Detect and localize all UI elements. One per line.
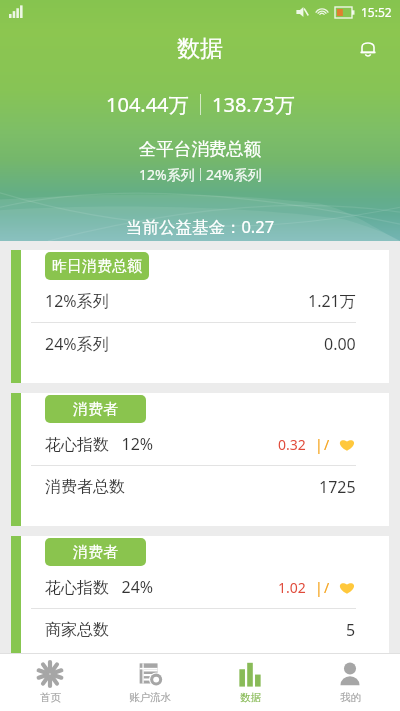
staticText: | — [315, 578, 323, 597]
staticText: 5 — [346, 619, 356, 641]
staticText: 1725 — [319, 476, 356, 498]
staticText: 138.73万 — [212, 91, 295, 117]
staticText: 首页 — [40, 691, 61, 704]
staticText: 花心指数 24% — [45, 576, 154, 598]
staticText: | — [315, 435, 323, 454]
button[interactable]: Notifications — [348, 28, 388, 68]
staticText: 1.21万 — [308, 290, 356, 312]
staticText: 12%系列 — [45, 290, 109, 312]
button[interactable]: 昨日消费总额 — [11, 250, 389, 383]
button[interactable]: 数据 — [200, 654, 300, 711]
staticText: 消费者 — [73, 400, 118, 419]
staticText: 12%系列 — [139, 165, 195, 184]
staticText: / — [324, 578, 330, 597]
staticText: 15:52 — [361, 4, 392, 20]
staticText: 104.44万 — [106, 91, 189, 117]
staticText: 数据 — [240, 691, 261, 704]
staticText: 账户流水 — [129, 691, 171, 704]
staticText: 我的 — [340, 691, 361, 704]
staticText: / — [324, 435, 330, 454]
staticText: 花心指数 12% — [45, 433, 154, 455]
staticText: 24%系列 — [45, 333, 109, 355]
staticText: 数据 — [0, 34, 400, 63]
staticText: 昨日消费总额 — [52, 257, 142, 276]
staticText: 0.00 — [324, 333, 356, 355]
staticText: 24%系列 — [206, 165, 262, 184]
staticText: 消费者总数 — [45, 477, 125, 497]
button[interactable]: 账户流水 — [100, 654, 200, 711]
staticText: 商家总数 — [45, 620, 109, 640]
button[interactable]: 首页 — [0, 654, 100, 711]
button[interactable]: 消费者 — [11, 536, 389, 653]
staticText: 全平台消费总额 — [0, 138, 400, 160]
staticText: 当前公益基金：0.27 — [0, 215, 400, 238]
button[interactable]: 我的 — [300, 654, 400, 711]
staticText: 1.02 — [278, 578, 306, 597]
button[interactable]: 消费者 — [11, 393, 389, 526]
staticText: 消费者 — [73, 543, 118, 562]
staticText: 0.32 — [278, 435, 306, 454]
